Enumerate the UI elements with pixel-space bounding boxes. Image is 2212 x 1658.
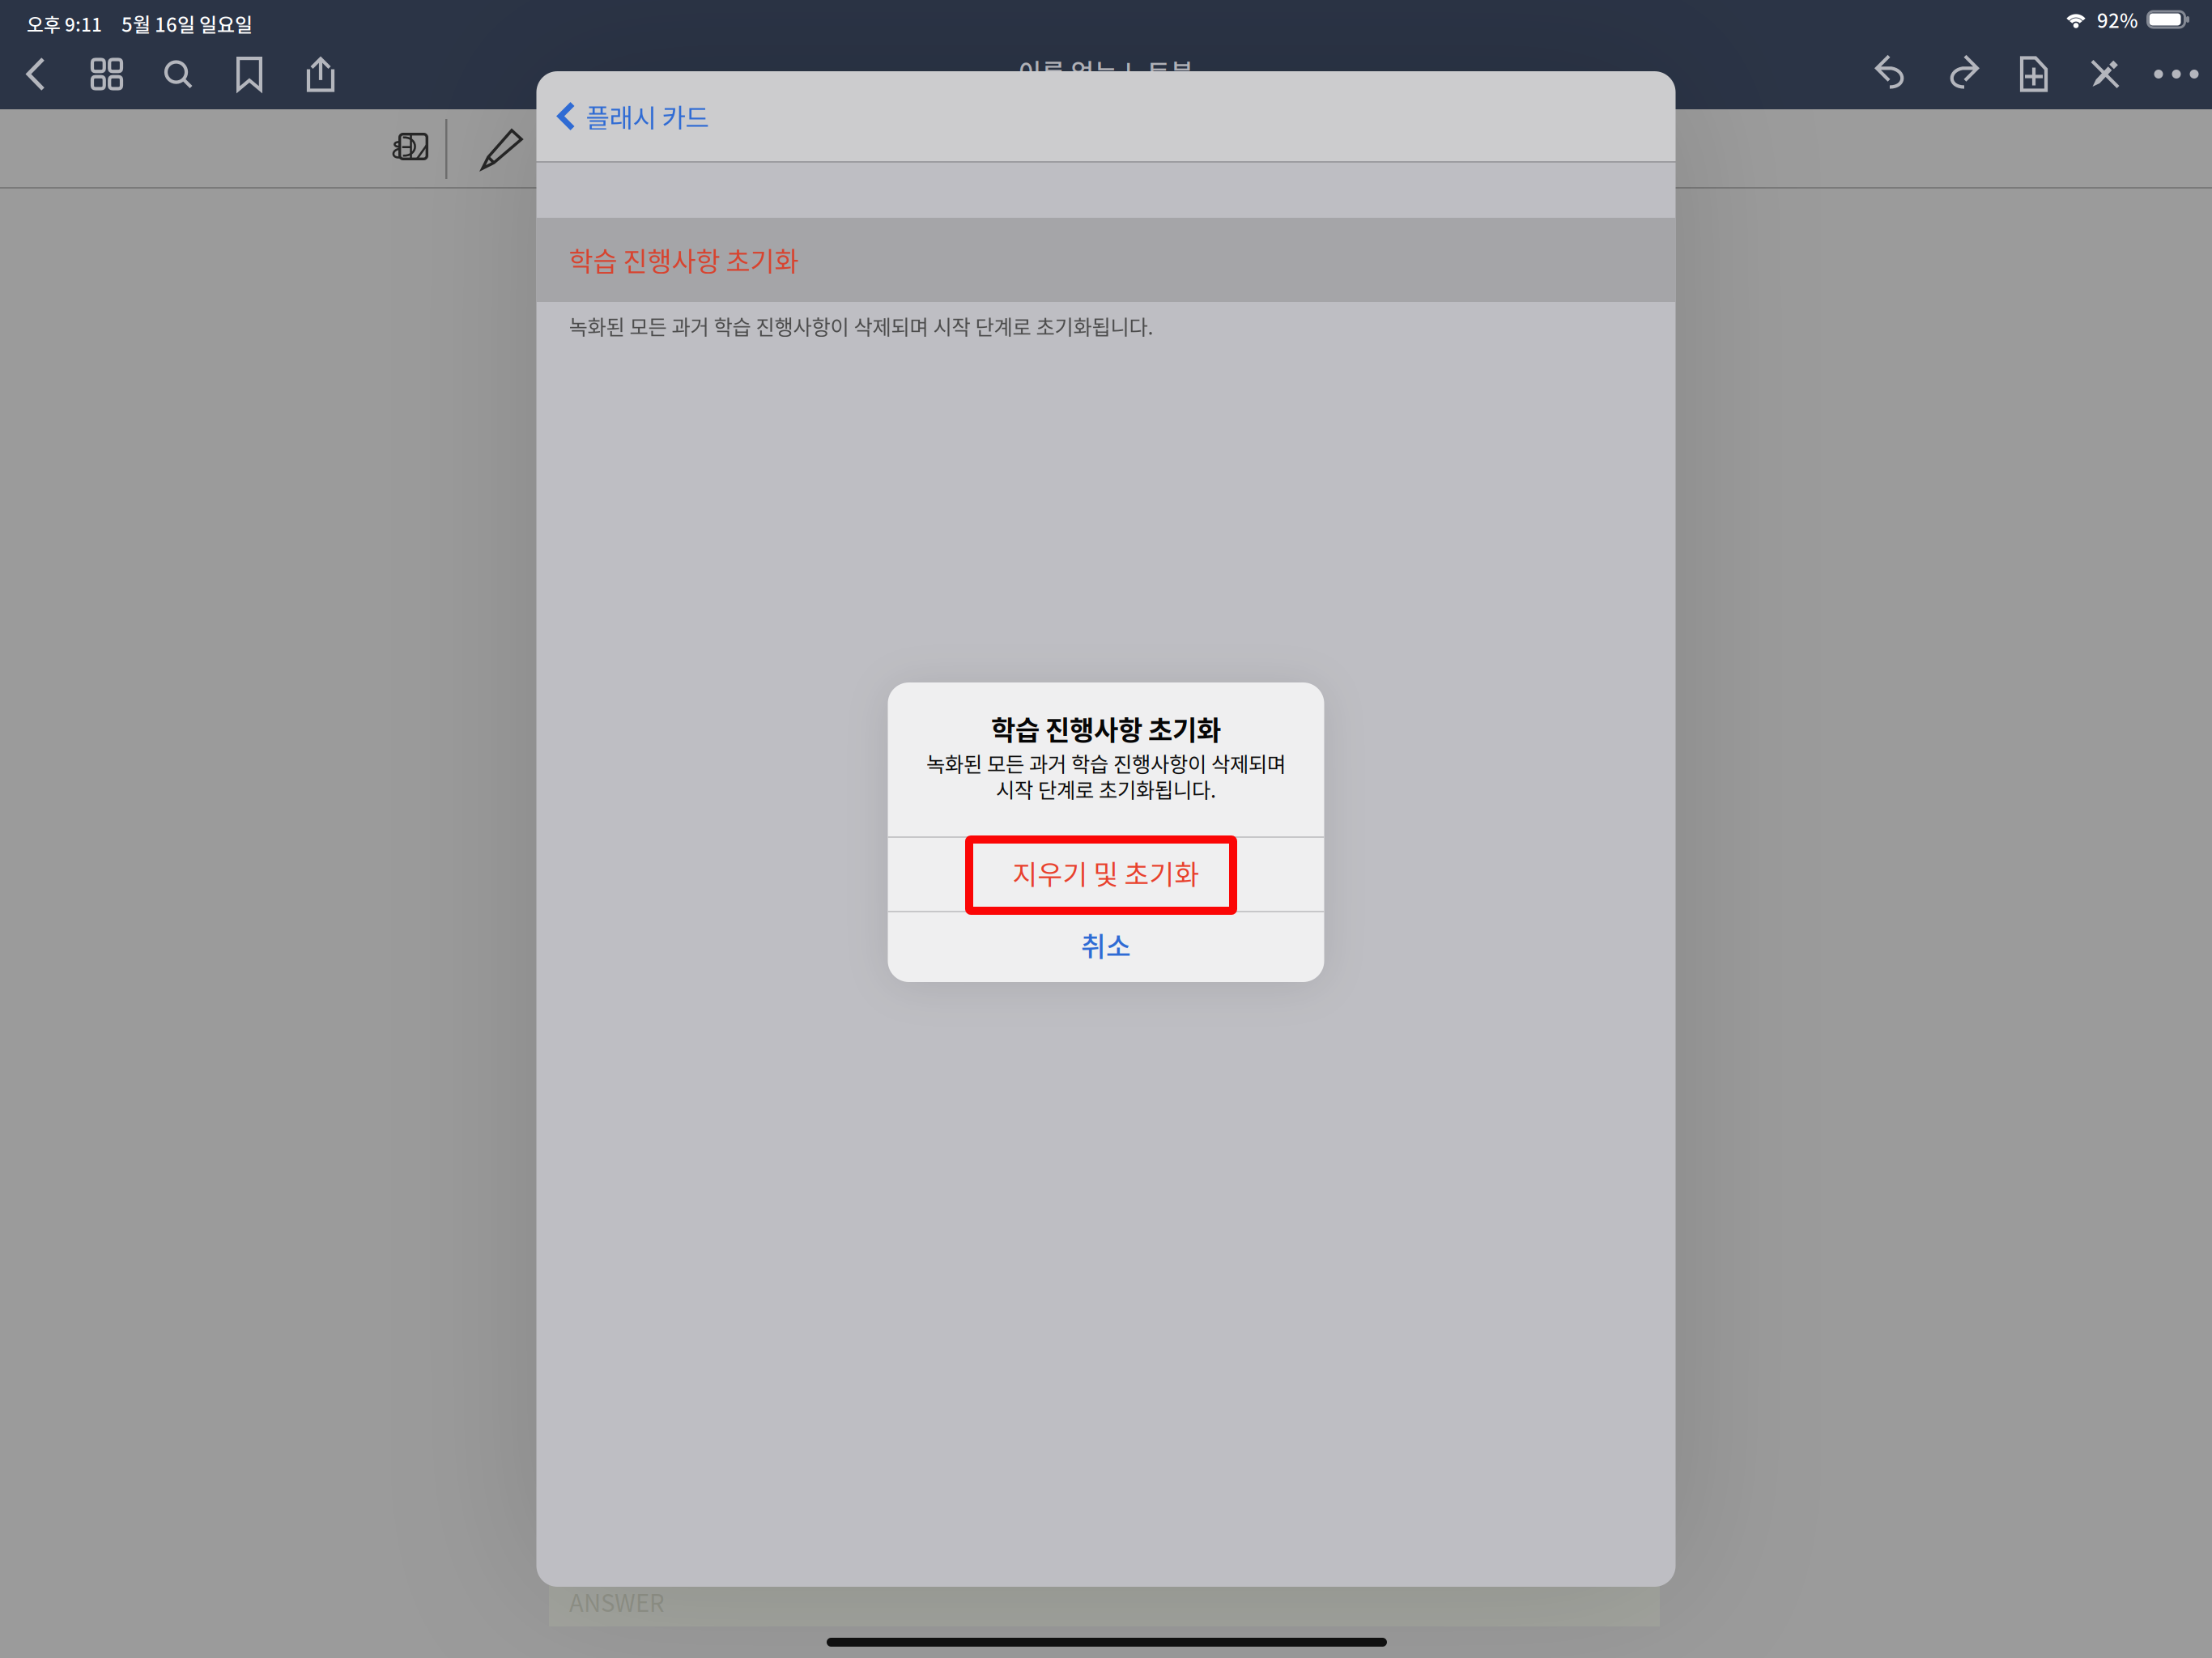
- button[interactable]: 학습 진행사항 초기화: [536, 218, 1676, 302]
- staticText: 학습 진행사항 초기화: [569, 241, 799, 279]
- button[interactable]: Undo: [1856, 39, 1927, 109]
- staticText: 92%: [2097, 5, 2138, 34]
- button[interactable]: Share: [285, 39, 356, 109]
- button[interactable]: 취소: [888, 912, 1324, 982]
- button[interactable]: Back: [0, 39, 71, 109]
- staticText: 오후 9:11: [27, 10, 102, 37]
- staticText: 녹화된 모든 과거 학습 진행사항이 삭제되며: [926, 748, 1286, 778]
- button[interactable]: More: [2141, 39, 2212, 109]
- button[interactable]: Redo: [1927, 39, 1998, 109]
- button[interactable]: Hide markup: [2069, 39, 2141, 109]
- button[interactable]: 플래시 카드: [536, 80, 727, 153]
- staticText: 이름 없는 노트북: [1018, 53, 1194, 90]
- staticText: 시작 단계로 초기화됩니다.: [996, 774, 1216, 804]
- staticText: 지우기 및 초기화: [1012, 853, 1200, 892]
- button[interactable]: Search: [143, 39, 214, 109]
- staticText: ANSWER: [569, 1584, 665, 1619]
- button[interactable]: Page thumbnails: [71, 39, 143, 109]
- button[interactable]: Bookmarks: [214, 39, 285, 109]
- button[interactable]: New page: [1998, 39, 2069, 109]
- button[interactable]: 지우기 및 초기화: [888, 838, 1324, 911]
- staticText: 플래시 카드: [586, 97, 709, 135]
- staticText: 5월 16일 일요일: [121, 9, 253, 38]
- staticText: 취소: [1081, 925, 1131, 964]
- staticText: 학습 진행사항 초기화: [991, 709, 1221, 748]
- staticText: 녹화된 모든 과거 학습 진행사항이 삭제되며 시작 단계로 초기화됩니다.: [569, 311, 1153, 341]
